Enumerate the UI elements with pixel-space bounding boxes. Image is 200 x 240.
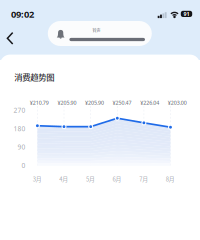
staticText: 4月 xyxy=(59,175,68,183)
staticText: 6月 xyxy=(113,175,122,183)
staticText: 消费趋势图 xyxy=(14,71,54,83)
staticText: 8月 xyxy=(166,175,175,183)
staticText: ¥205.90 xyxy=(57,99,76,106)
staticText: 180 xyxy=(14,124,26,133)
staticText: 09:02 xyxy=(11,8,34,20)
staticText: ¥226.04 xyxy=(140,99,159,106)
staticText: ¥210.79 xyxy=(30,99,49,106)
staticText: 0 xyxy=(22,161,26,170)
staticText: 270 xyxy=(14,106,26,115)
staticText: 91 xyxy=(183,10,189,17)
staticText: 3月 xyxy=(33,175,42,183)
staticText: 7月 xyxy=(139,175,148,183)
staticText: ¥250.47 xyxy=(113,99,132,106)
staticText: 铃声 xyxy=(92,28,100,33)
button[interactable]: Back xyxy=(0,0,24,48)
staticText: 90 xyxy=(18,143,26,151)
staticText: ¥205.90 xyxy=(85,99,104,106)
staticText: ¥203.00 xyxy=(168,99,187,106)
staticText: 5月 xyxy=(86,175,95,183)
